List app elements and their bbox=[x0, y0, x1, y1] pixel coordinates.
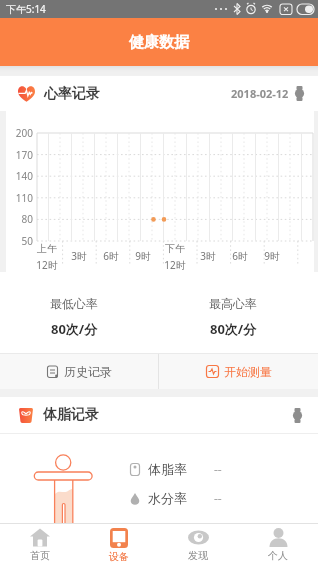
staticText: 最高心率 bbox=[209, 296, 257, 311]
staticText: 9时 bbox=[127, 249, 159, 263]
staticText: 2018-02-12 bbox=[231, 86, 289, 101]
staticText: 下午 12时 bbox=[159, 242, 191, 272]
staticText: 体脂记录 bbox=[43, 406, 99, 424]
staticText: 健康数据 bbox=[129, 33, 189, 52]
staticText: 80次/分 bbox=[210, 320, 257, 338]
staticText: 9时 bbox=[256, 249, 288, 263]
button[interactable]: 首页 bbox=[0, 524, 79, 566]
staticText: 3时 bbox=[63, 249, 95, 263]
staticText: 下午5:14 bbox=[6, 2, 46, 16]
staticText: 50 bbox=[6, 234, 33, 248]
button[interactable]: 发现 bbox=[158, 524, 238, 566]
staticText: 6时 bbox=[95, 249, 127, 263]
staticText: 水分率 bbox=[148, 490, 187, 506]
staticText: 历史记录 bbox=[64, 364, 112, 379]
staticText: 心率记录 bbox=[44, 85, 100, 103]
staticText: 3时 bbox=[192, 249, 224, 263]
staticText: 170 bbox=[6, 148, 33, 162]
staticText: 最低心率 bbox=[50, 296, 98, 311]
button[interactable]: 开始测量 bbox=[159, 354, 318, 389]
button[interactable]: 设备 bbox=[79, 524, 158, 566]
staticText: 140 bbox=[6, 169, 33, 183]
staticText: 上午 12时 bbox=[31, 242, 63, 272]
staticText: 开始测量 bbox=[224, 364, 272, 379]
staticText: 发现 bbox=[188, 549, 208, 562]
staticText: 80 bbox=[6, 212, 33, 226]
staticText: 体脂率 bbox=[148, 461, 187, 477]
staticText: 个人 bbox=[268, 549, 288, 562]
staticText: 首页 bbox=[30, 549, 50, 562]
staticText: -- bbox=[214, 490, 222, 506]
staticText: 80次/分 bbox=[51, 320, 98, 338]
staticText: 6时 bbox=[224, 249, 256, 263]
staticText: -- bbox=[214, 461, 222, 477]
staticText: 设备 bbox=[109, 550, 129, 563]
staticText: 110 bbox=[6, 191, 33, 205]
button[interactable]: 个人 bbox=[238, 524, 318, 566]
button[interactable]: 历史记录 bbox=[0, 354, 158, 389]
staticText: 200 bbox=[6, 126, 33, 140]
